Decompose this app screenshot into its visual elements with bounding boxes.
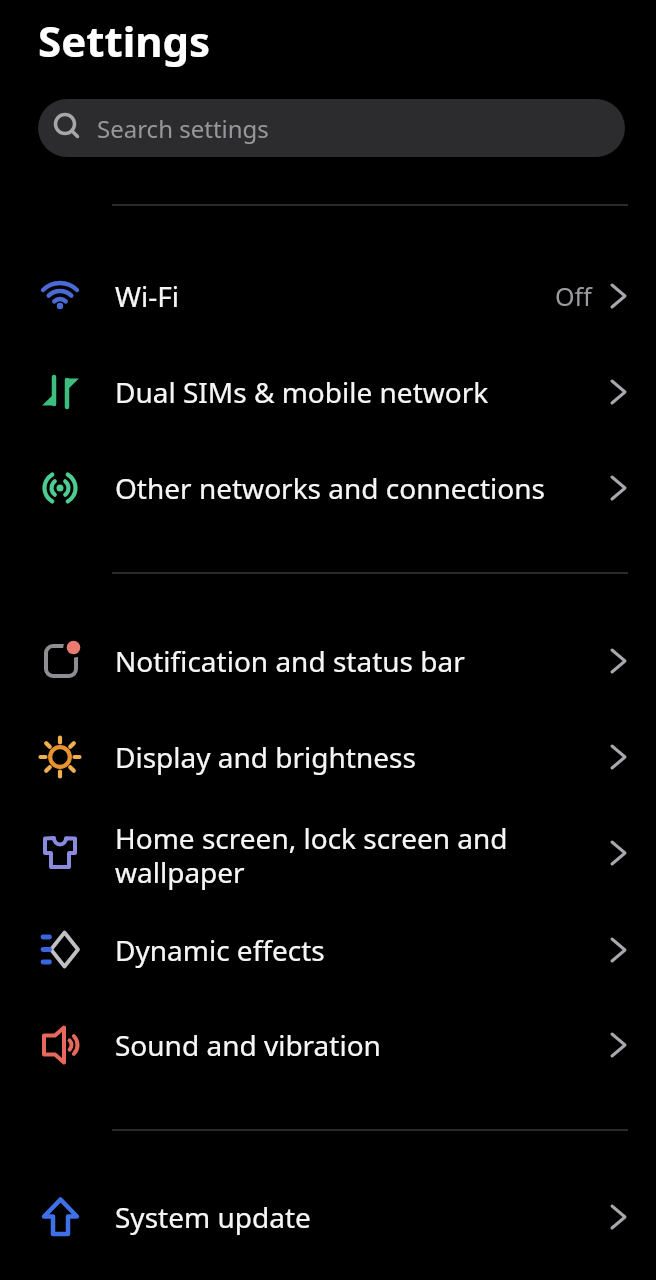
- button[interactable]: Display and brightness: [0, 709, 656, 805]
- staticText: Home screen, lock screen and: [115, 819, 508, 857]
- staticText: Settings: [38, 12, 211, 69]
- button[interactable]: Wi-Fi: [0, 248, 656, 344]
- staticText: Dynamic effects: [115, 931, 325, 969]
- staticText: wallpaper: [115, 853, 245, 891]
- button[interactable]: Home screen, lock screen and: [0, 805, 656, 901]
- button[interactable]: Dynamic effects: [0, 902, 656, 998]
- staticText: Off: [555, 279, 592, 313]
- staticText: Sound and vibration: [115, 1026, 381, 1064]
- staticText: Notification and status bar: [115, 642, 465, 680]
- staticText: Search settings: [97, 112, 269, 145]
- button[interactable]: Notification and status bar: [0, 613, 656, 709]
- staticText: Dual SIMs & mobile network: [115, 373, 489, 411]
- button[interactable]: Sound and vibration: [0, 997, 656, 1093]
- button[interactable]: Dual SIMs & mobile network: [0, 344, 656, 440]
- staticText: Wi-Fi: [115, 277, 180, 315]
- button[interactable]: Search settings: [38, 99, 625, 157]
- staticText: Display and brightness: [115, 738, 416, 776]
- staticText: System update: [115, 1198, 311, 1236]
- button[interactable]: Other networks and connections: [0, 440, 656, 536]
- staticText: Other networks and connections: [115, 469, 545, 507]
- button[interactable]: System update: [0, 1169, 656, 1265]
